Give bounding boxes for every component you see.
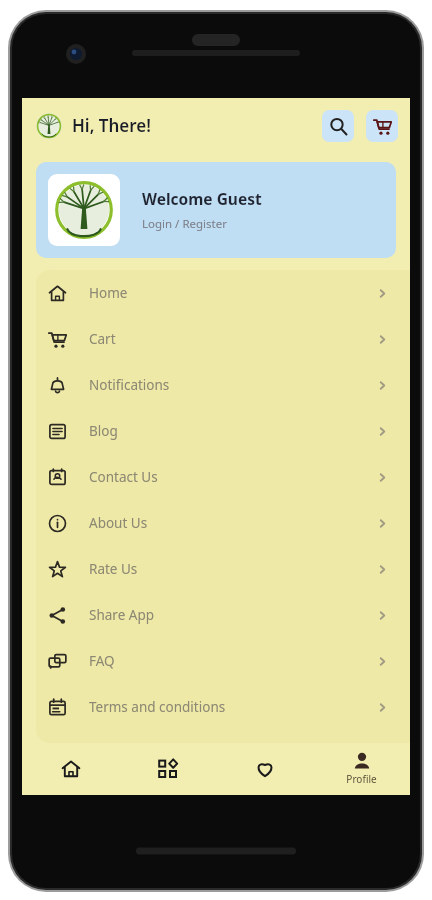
button[interactable]: Cart — [366, 110, 398, 142]
button[interactable]: Home — [22, 743, 119, 795]
staticText: Hi, There! — [72, 114, 151, 137]
staticText: Notifications — [89, 376, 170, 394]
button[interactable]: Notifications — [36, 362, 410, 408]
button[interactable]: Categories — [119, 743, 216, 795]
staticText: Contact Us — [89, 468, 158, 486]
button[interactable]: Welcome Guest — [36, 162, 396, 258]
button[interactable]: Share App — [36, 592, 410, 638]
staticText: FAQ — [89, 652, 115, 670]
button[interactable]: Contact Us — [36, 454, 410, 500]
staticText: About Us — [89, 514, 148, 532]
button[interactable]: Terms and conditions — [36, 684, 410, 730]
staticText: Home — [89, 284, 128, 302]
button[interactable]: Search — [322, 110, 354, 142]
staticText: Blog — [89, 422, 118, 440]
staticText: Terms and conditions — [89, 698, 226, 716]
staticText: Login / Register — [142, 216, 227, 232]
button[interactable]: Wishlist — [216, 743, 313, 795]
button[interactable]: Home — [36, 270, 410, 316]
staticText: Welcome Guest — [142, 188, 262, 209]
button[interactable]: About Us — [36, 500, 410, 546]
button[interactable]: Rate Us — [36, 546, 410, 592]
staticText: Profile — [346, 772, 377, 786]
staticText: Cart — [89, 330, 116, 348]
button[interactable]: FAQ — [36, 638, 410, 684]
button[interactable]: Profile — [313, 743, 410, 795]
button[interactable]: Blog — [36, 408, 410, 454]
button[interactable]: Profile avatar — [36, 113, 62, 139]
button[interactable]: Cart — [36, 316, 410, 362]
staticText: Share App — [89, 606, 154, 624]
staticText: Rate Us — [89, 560, 138, 578]
